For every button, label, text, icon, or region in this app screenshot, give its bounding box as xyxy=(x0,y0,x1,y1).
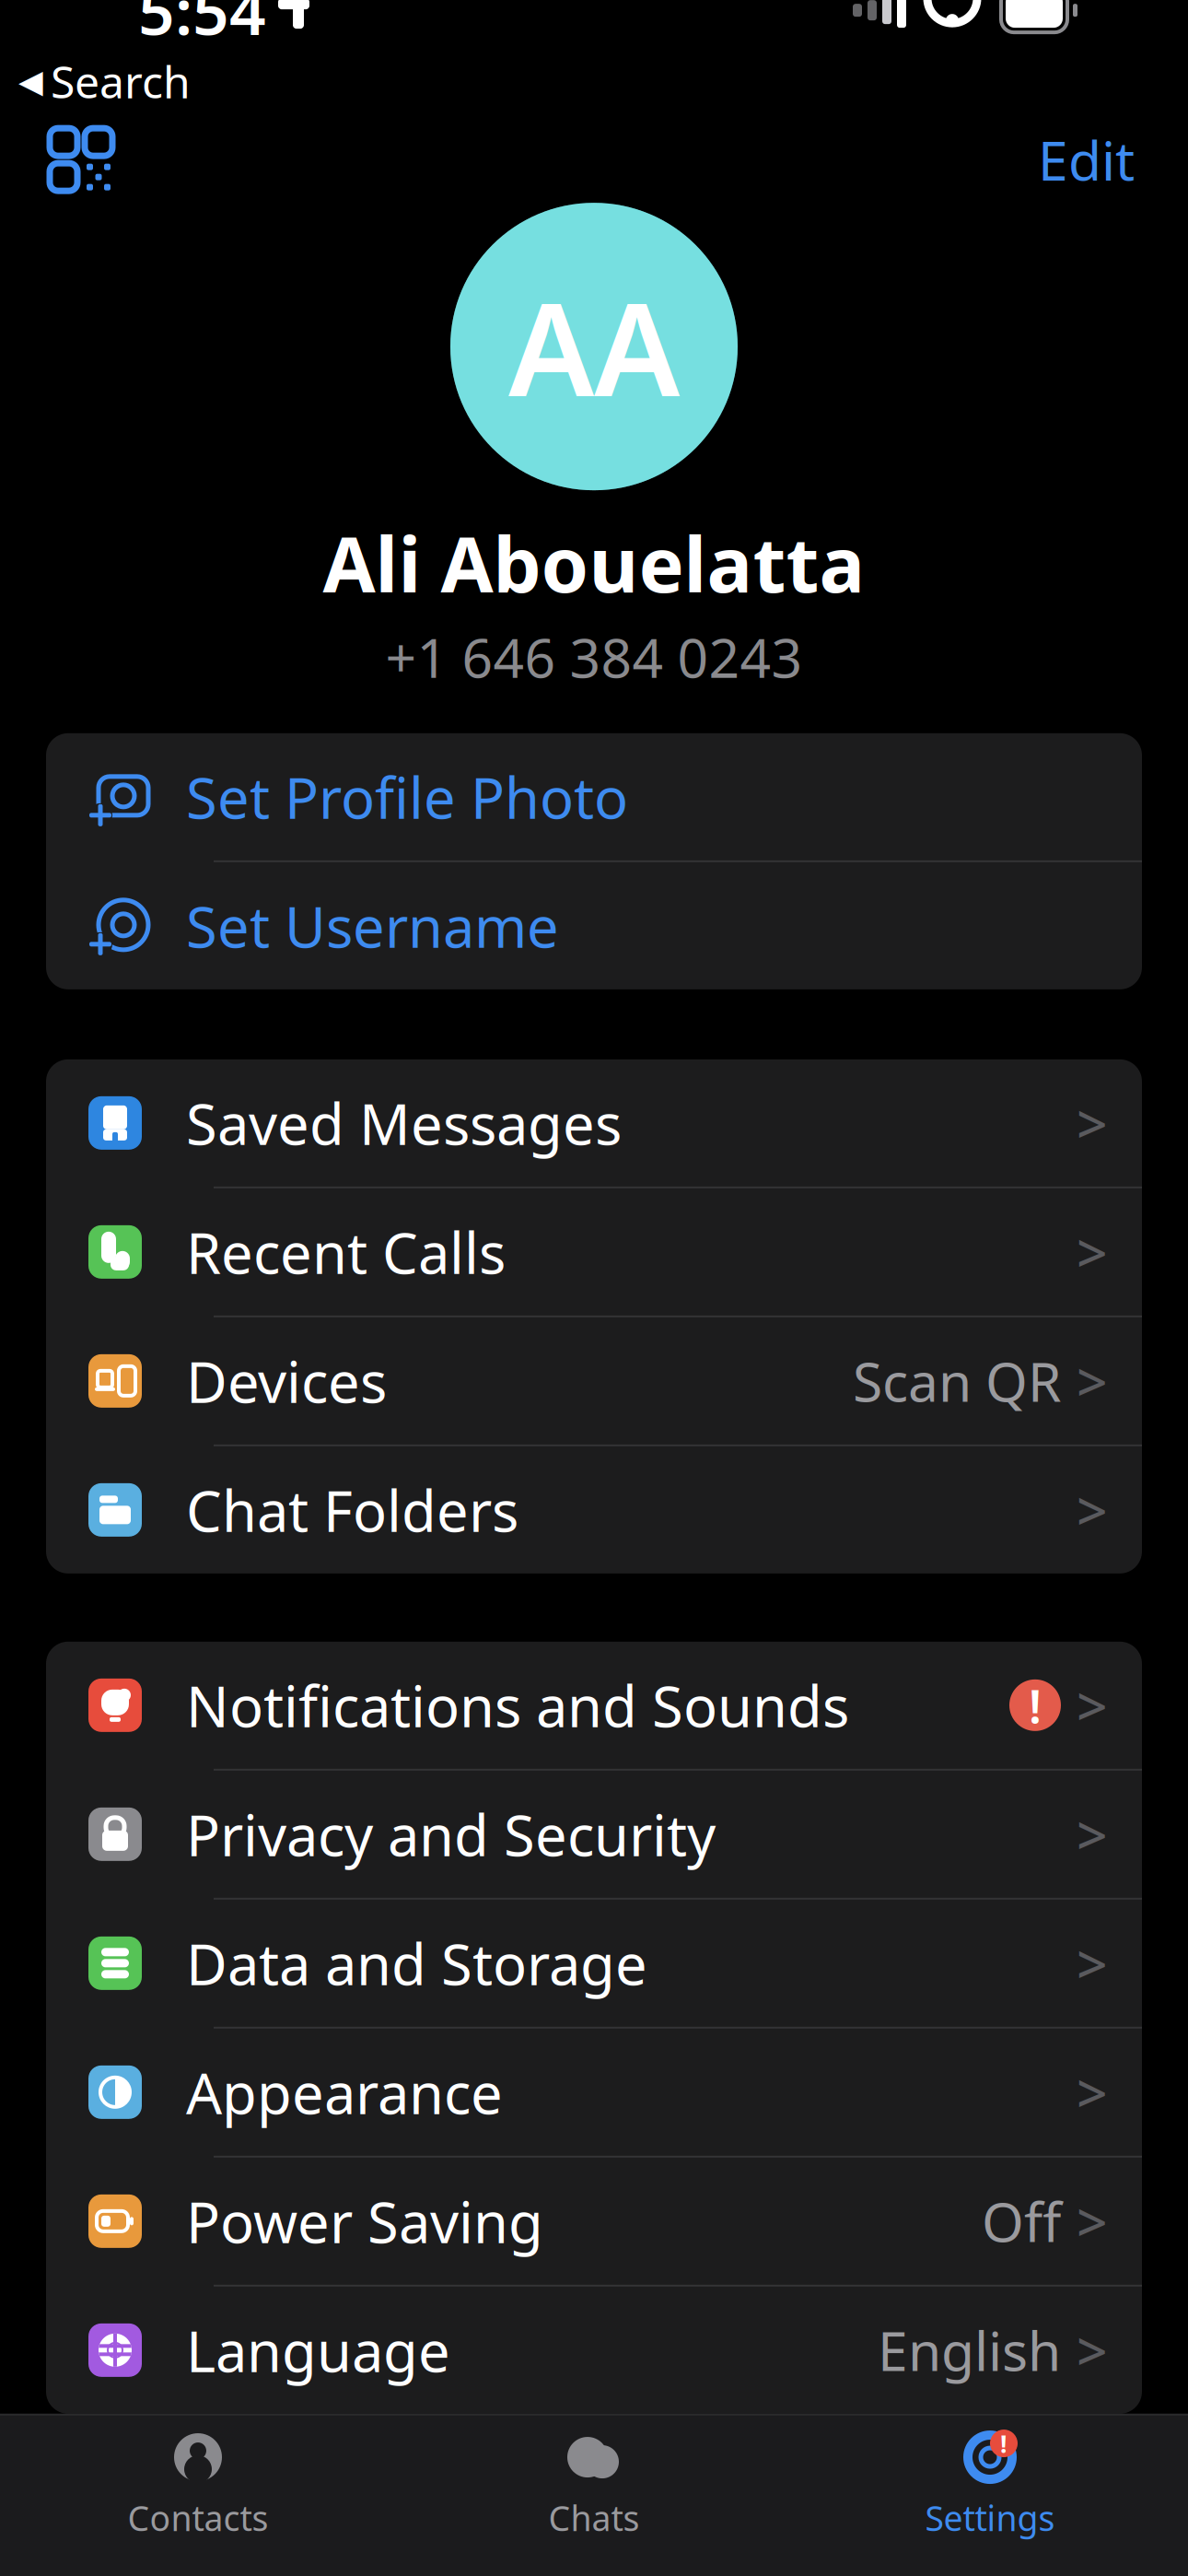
staticText: Off xyxy=(982,2185,1061,2257)
staticText: ! xyxy=(1029,1674,1042,1736)
button[interactable]: Language xyxy=(46,2287,1142,2414)
staticText: ◀ xyxy=(18,63,43,99)
staticText: Privacy and Security xyxy=(186,1797,716,1872)
staticText: Edit xyxy=(1038,124,1135,195)
staticText: Set Username xyxy=(186,888,559,963)
staticText: Chat Folders xyxy=(186,1472,518,1547)
button[interactable]: Set Profile Photo xyxy=(46,733,1142,860)
button[interactable]: Contacts xyxy=(0,2414,396,2555)
button[interactable]: Chats xyxy=(396,2414,792,2555)
staticText: > xyxy=(1077,1474,1108,1546)
button[interactable]: ! xyxy=(792,2414,1188,2555)
staticText: Scan QR xyxy=(853,1345,1061,1417)
staticText: +1 646 384 0243 xyxy=(385,621,803,693)
button[interactable]: Set Username xyxy=(46,862,1142,989)
button[interactable]: Notifications and Sounds xyxy=(46,1642,1142,1769)
staticText: English xyxy=(878,2314,1061,2386)
staticText: Settings xyxy=(925,2495,1055,2541)
staticText: Contacts xyxy=(128,2495,268,2541)
staticText: ! xyxy=(1000,2427,1007,2460)
button[interactable]: Edit xyxy=(1025,115,1147,204)
button[interactable]: QR Code xyxy=(37,115,125,204)
staticText: Saved Messages xyxy=(186,1085,622,1160)
button[interactable]: Devices xyxy=(46,1317,1142,1444)
staticText: > xyxy=(1077,1927,1108,1999)
staticText: > xyxy=(1077,1087,1108,1159)
staticText: > xyxy=(1077,1669,1108,1741)
button[interactable]: Chat Folders xyxy=(46,1446,1142,1573)
staticText: > xyxy=(1077,1798,1108,1870)
staticText: Chats xyxy=(548,2495,640,2541)
button[interactable]: Saved Messages xyxy=(46,1059,1142,1186)
staticText: Notifications and Sounds xyxy=(186,1668,849,1743)
staticText: Devices xyxy=(186,1343,387,1418)
staticText: Ali Abouelatta xyxy=(323,512,865,614)
button[interactable]: Recent Calls xyxy=(46,1188,1142,1315)
button[interactable]: Privacy and Security xyxy=(46,1771,1142,1898)
staticText: Language xyxy=(186,2313,450,2388)
staticText: 5:54 xyxy=(138,0,266,53)
staticText: AA xyxy=(508,262,680,431)
staticText: Data and Storage xyxy=(186,1926,647,2001)
staticText: Recent Calls xyxy=(186,1214,506,1289)
staticText: Appearance xyxy=(186,2055,503,2130)
staticText: > xyxy=(1077,1216,1108,1288)
button[interactable]: Appearance xyxy=(46,2029,1142,2156)
staticText: Search xyxy=(51,52,191,111)
button[interactable]: ◀ xyxy=(0,61,1188,102)
staticText: Set Profile Photo xyxy=(186,759,628,834)
button[interactable]: Data and Storage xyxy=(46,1900,1142,2027)
staticText: > xyxy=(1077,2314,1108,2386)
button[interactable]: Power Saving xyxy=(46,2158,1142,2285)
staticText: Power Saving xyxy=(186,2184,543,2259)
staticText: > xyxy=(1077,1345,1108,1417)
staticText: > xyxy=(1077,2185,1108,2257)
staticText: > xyxy=(1077,2056,1108,2128)
